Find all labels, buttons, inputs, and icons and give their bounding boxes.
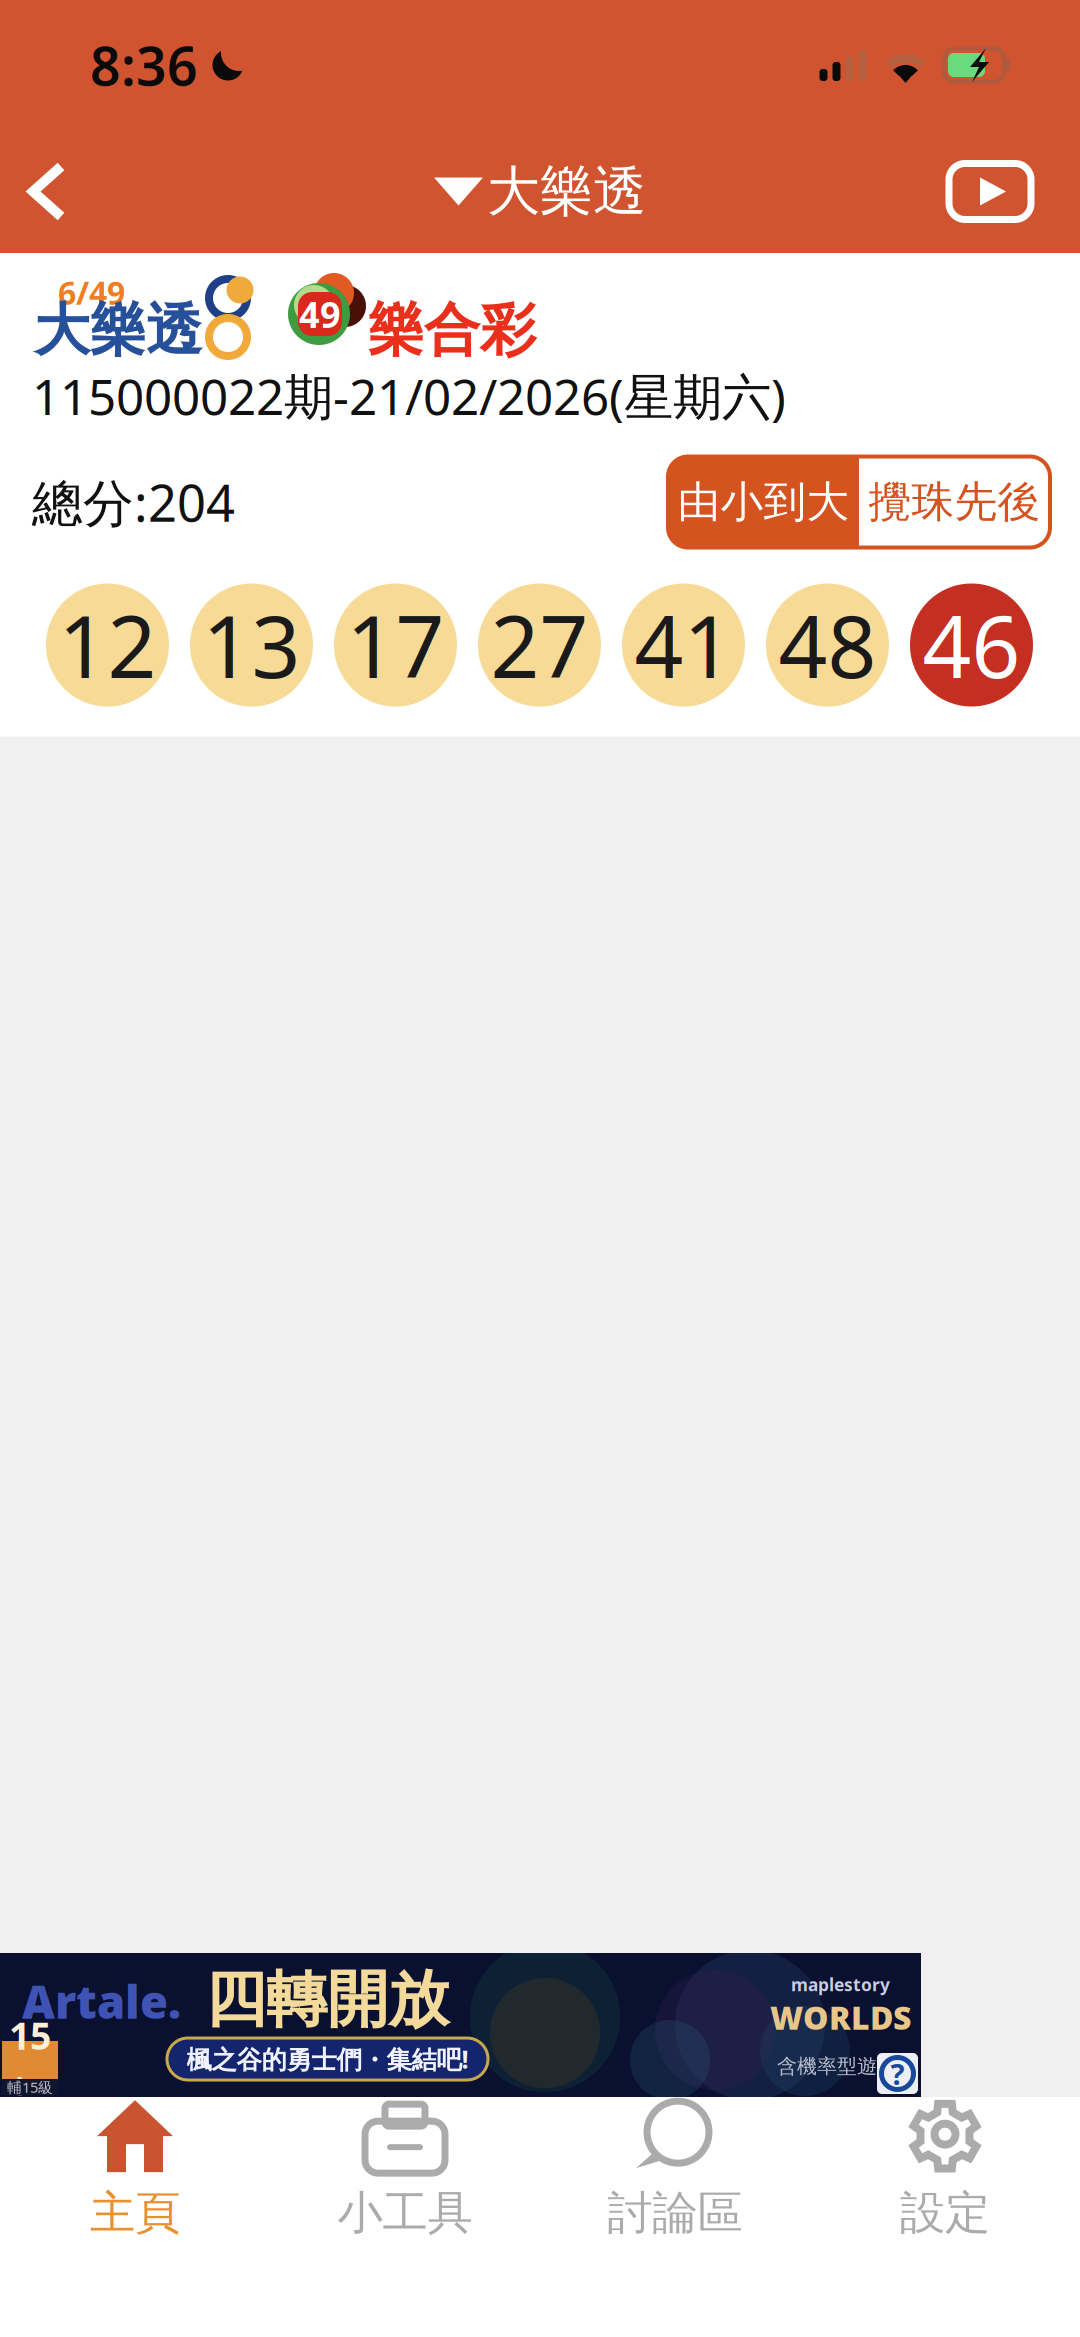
button[interactable]: 由小到大 (668, 456, 859, 547)
staticText: ? (890, 2054, 904, 2093)
staticText: 46 (922, 588, 1020, 702)
staticText: 17 (346, 588, 444, 702)
staticText: 攪珠先後 (868, 476, 1040, 528)
button[interactable]: 攪珠先後 (859, 456, 1050, 547)
staticText: 15+ (9, 2010, 51, 2110)
staticText: 四轉開放 (205, 1962, 449, 2037)
staticText: WORLDS (770, 1996, 911, 2038)
staticText: 討論區 (607, 2185, 742, 2241)
button[interactable]: YouTube (949, 130, 1080, 253)
button[interactable]: 討論區 (540, 2097, 810, 2242)
button[interactable]: 主頁 (0, 2097, 270, 2242)
button[interactable]: 設定 (810, 2097, 1080, 2242)
staticText: Artale. (22, 1971, 181, 2031)
staticText: 115000022期-21/02/2026(星期六) (32, 363, 786, 428)
button[interactable]: Back (0, 130, 131, 253)
staticText: 由小到大 (677, 476, 849, 528)
staticText: 總分:204 (32, 468, 235, 536)
staticText: 輔15級 (7, 2077, 53, 2097)
staticText: 49 (299, 290, 341, 338)
button[interactable]: 小工具 (270, 2097, 540, 2242)
staticText: 6/49 (58, 271, 125, 313)
staticText: 27 (490, 588, 588, 702)
staticText: 小工具 (337, 2185, 472, 2241)
staticText: 大樂透 (487, 159, 646, 224)
staticText: 楓之谷的勇士們・集結吧! (186, 2042, 468, 2076)
button[interactable]: 大樂透 (434, 130, 646, 253)
staticText: maplestory (791, 1973, 890, 1996)
staticText: 樂合彩 (368, 296, 536, 365)
button[interactable]: Advertisement (0, 1953, 921, 2097)
staticText: 48 (778, 588, 876, 702)
staticText: 41 (634, 588, 732, 702)
staticText: 設定 (900, 2185, 990, 2241)
staticText: 大樂透 (34, 296, 202, 365)
staticText: 含機率型遊 (777, 2054, 877, 2079)
staticText: 主頁 (90, 2185, 180, 2241)
staticText: 12 (58, 588, 156, 702)
staticText: 13 (202, 588, 300, 702)
staticText: 8:36 (90, 30, 198, 100)
